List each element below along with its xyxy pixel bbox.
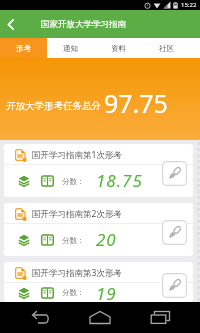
button[interactable] xyxy=(80,302,120,333)
button[interactable] xyxy=(140,302,180,333)
staticText: 15:22 xyxy=(181,1,197,9)
staticText: 20 xyxy=(96,228,117,251)
button[interactable] xyxy=(162,161,187,186)
button[interactable] xyxy=(162,273,187,298)
staticText: 分数： xyxy=(62,236,85,245)
staticText: 形考 xyxy=(16,44,31,53)
staticText: 通知 xyxy=(63,44,78,53)
button[interactable]: 通知 xyxy=(47,38,94,58)
button[interactable]: 社区 xyxy=(142,38,190,58)
button[interactable]: 资料 xyxy=(94,38,142,58)
staticText: 国家开放大学学习指南 xyxy=(41,19,126,30)
button[interactable]: 形考 xyxy=(0,38,47,58)
button[interactable]: 国开学习指南第2次形考 xyxy=(4,203,193,256)
staticText: 国开学习指南第1次形考 xyxy=(32,149,122,161)
button[interactable] xyxy=(20,302,60,333)
staticText: 18.75 xyxy=(96,169,143,192)
staticText: 分数： xyxy=(62,288,85,297)
staticText: 国开学习指南第2次形考 xyxy=(32,208,122,220)
button[interactable] xyxy=(162,220,187,245)
staticText: 国开学习指南第3次形考 xyxy=(32,267,122,279)
button[interactable]: 国开学习指南第1次形考 xyxy=(4,144,193,197)
button[interactable]: 国开学习指南第3次形考 xyxy=(4,262,193,302)
staticText: 社区 xyxy=(159,44,174,53)
staticText: 19 xyxy=(96,282,117,301)
staticText: 分数： xyxy=(62,177,85,186)
staticText: 资料 xyxy=(111,44,126,53)
staticText: 开放大学形考任务总分 xyxy=(6,100,101,112)
staticText: 97.75 xyxy=(104,86,168,120)
button[interactable] xyxy=(0,13,22,35)
